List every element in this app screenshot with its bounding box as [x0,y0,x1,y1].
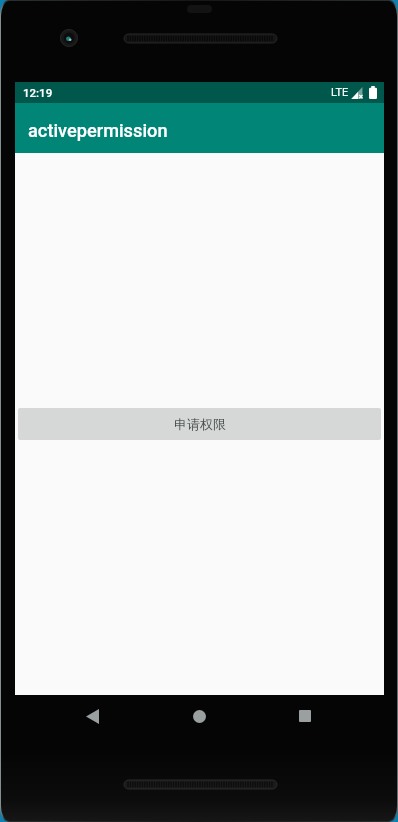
staticText: 12:19 [23,86,53,99]
staticText: 申请权限 [174,416,226,432]
button[interactable]: 申请权限 [18,408,381,440]
staticText: activepermission [28,120,168,141]
button[interactable]: Home [179,696,219,736]
staticText: LTE [331,86,349,99]
button[interactable]: Recents [285,696,325,736]
button[interactable]: Back [72,696,112,736]
